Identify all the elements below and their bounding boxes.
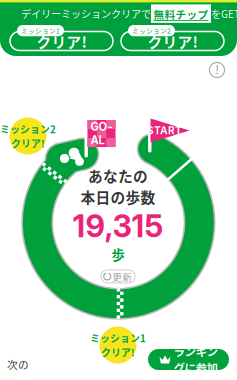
staticText: あなたの — [88, 165, 148, 186]
staticText: 歩 — [111, 245, 124, 264]
staticText: クリア! — [101, 345, 135, 359]
staticText: ! — [215, 63, 218, 77]
staticText: 本日の歩数 — [80, 186, 155, 207]
button[interactable]: 更新 — [101, 270, 135, 283]
staticText: クリア! — [147, 31, 197, 52]
staticText: ミッション1 — [21, 26, 60, 35]
staticText: クリア! — [11, 136, 45, 150]
staticText: START — [147, 124, 182, 137]
staticText: 更新 — [112, 269, 132, 283]
staticText: GOAL — [90, 120, 112, 147]
staticText: クリア! — [36, 31, 86, 52]
button[interactable]: クリア! — [121, 24, 224, 50]
staticText: デイリーミッションクリアで — [21, 6, 151, 21]
button[interactable]: クリア! — [10, 24, 113, 50]
staticText: 次の — [7, 356, 29, 372]
staticText: 19,315 — [72, 207, 163, 245]
staticText: 無料チップ — [153, 6, 208, 22]
button[interactable]: Info — [205, 58, 229, 82]
staticText: をGET！ — [211, 6, 237, 21]
staticText: ミッション1 — [90, 331, 146, 345]
staticText: ミッション2 — [0, 122, 56, 136]
staticText: ランキングに参加 — [173, 343, 217, 376]
staticText: ミッション2 — [132, 26, 171, 35]
button[interactable]: ランキングに参加 — [148, 349, 229, 370]
